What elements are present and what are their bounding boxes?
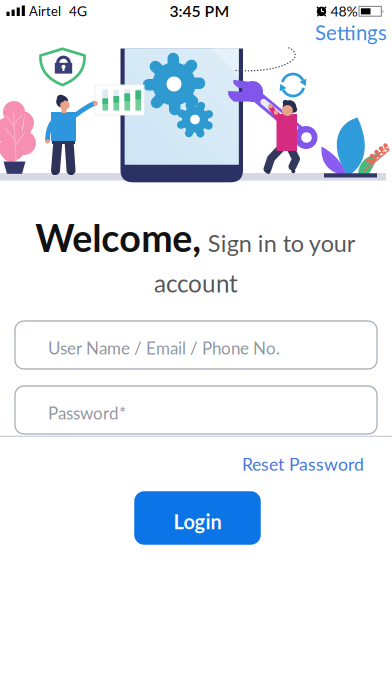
staticText: Login: [173, 509, 221, 533]
button[interactable]: Reset Password: [242, 453, 364, 474]
staticText: 3:45 PM: [169, 2, 229, 20]
staticText: Password*: [48, 403, 126, 423]
button[interactable]: User Name / Email / Phone No.: [15, 321, 377, 369]
staticText: 48%: [330, 3, 357, 19]
staticText: 4G: [69, 3, 87, 19]
staticText: Reset Password: [242, 453, 364, 474]
staticText: Airtel: [29, 3, 61, 19]
button[interactable]: Settings: [315, 20, 387, 44]
staticText: Settings: [315, 20, 387, 44]
staticText: Sign in to your: [208, 229, 356, 257]
button[interactable]: Password*: [15, 386, 377, 434]
button[interactable]: Login: [134, 491, 261, 545]
staticText: account: [154, 268, 238, 297]
staticText: Welcome,: [35, 215, 201, 260]
staticText: User Name / Email / Phone No.: [48, 338, 280, 358]
